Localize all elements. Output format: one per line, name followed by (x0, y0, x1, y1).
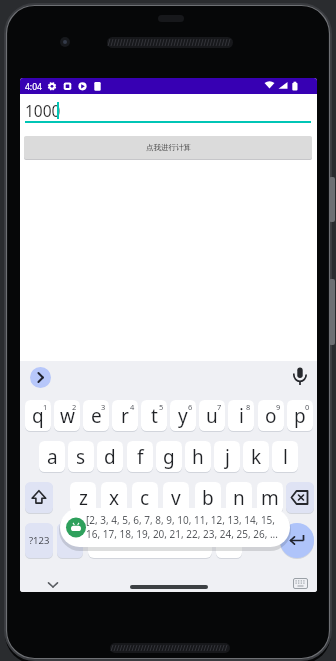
staticText: q (32, 403, 44, 429)
staticText: 9 (276, 402, 281, 412)
button[interactable]: d (97, 441, 123, 472)
staticText: ?123 (29, 534, 50, 547)
button[interactable]: j (214, 441, 240, 472)
button[interactable]: m (257, 482, 283, 513)
button[interactable]: ?123 (25, 523, 53, 558)
staticText: l (283, 444, 288, 470)
staticText: t (151, 403, 158, 429)
staticText: z (79, 485, 88, 511)
button[interactable]: u (199, 400, 225, 431)
staticText: 5 (159, 402, 164, 412)
button[interactable] (293, 578, 308, 589)
button[interactable]: s (68, 441, 94, 472)
button[interactable]: o (258, 400, 284, 431)
button[interactable] (30, 367, 51, 388)
button[interactable]: b (195, 482, 221, 513)
staticText: 3 (101, 402, 106, 412)
staticText: x (109, 485, 120, 511)
staticText: 1 (43, 402, 48, 412)
button[interactable]: c (132, 482, 158, 513)
staticText: 0 (305, 402, 310, 412)
staticText: e (91, 403, 102, 429)
staticText: m (261, 485, 279, 511)
button[interactable]: t (141, 400, 167, 431)
staticText: s (76, 444, 86, 470)
staticText: i (239, 403, 244, 429)
staticText: h (192, 444, 204, 470)
staticText: 8 (246, 402, 251, 412)
staticText: [2, 3, 4, 5, 6, 7, 8, 9, 10, 11, 12, 13,… (86, 513, 276, 527)
staticText: d (104, 444, 116, 470)
staticText: n (233, 485, 245, 511)
button[interactable]: v (163, 482, 189, 513)
button[interactable]: a (39, 441, 65, 472)
button[interactable]: h (185, 441, 211, 472)
staticText: u (206, 403, 218, 429)
staticText: g (163, 444, 175, 470)
button[interactable]: [2, 3, 4, 5, 6, 7, 8, 9, 10, 11, 12, 13,… (60, 508, 290, 547)
staticText: 点我进行计算 (146, 143, 191, 152)
staticText: f (137, 444, 144, 470)
staticText: 16, 17, 18, 19, 20, 21, 22, 23, 24, 25, … (86, 527, 278, 541)
button[interactable] (280, 523, 314, 558)
staticText: c (140, 485, 150, 511)
button[interactable] (216, 523, 242, 558)
staticText: p (294, 403, 306, 429)
staticText: 4 (130, 402, 135, 412)
button[interactable]: l (272, 441, 298, 472)
staticText: r (121, 403, 129, 429)
staticText: j (225, 444, 230, 470)
staticText: 1000 (25, 100, 61, 121)
button[interactable]: f (127, 441, 153, 472)
button[interactable] (25, 482, 53, 513)
staticText: 7 (217, 402, 222, 412)
button[interactable]: y (170, 400, 196, 431)
button[interactable] (48, 582, 58, 589)
button[interactable]: g (156, 441, 182, 472)
staticText: 2 (72, 402, 77, 412)
staticText: o (265, 403, 277, 429)
button[interactable]: k (243, 441, 269, 472)
button[interactable] (292, 366, 308, 388)
button[interactable]: r (112, 400, 138, 431)
button[interactable] (88, 523, 212, 558)
staticText: v (171, 485, 181, 511)
button[interactable] (57, 523, 83, 558)
staticText: k (251, 444, 262, 470)
button[interactable]: n (226, 482, 252, 513)
staticText: 6 (188, 402, 193, 412)
button[interactable]: i (228, 400, 254, 431)
button[interactable]: 点我进行计算 (24, 136, 312, 159)
staticText: 4:04 (25, 81, 42, 93)
button[interactable]: x (101, 482, 127, 513)
button[interactable]: z (70, 482, 96, 513)
staticText: y (178, 403, 188, 429)
button[interactable] (286, 482, 314, 513)
staticText: a (47, 444, 58, 470)
button[interactable]: q (25, 400, 51, 431)
button[interactable] (130, 585, 208, 589)
button[interactable]: w (54, 400, 80, 431)
staticText: w (60, 403, 75, 429)
staticText: b (202, 485, 214, 511)
button[interactable]: p (287, 400, 313, 431)
button[interactable]: e (83, 400, 109, 431)
